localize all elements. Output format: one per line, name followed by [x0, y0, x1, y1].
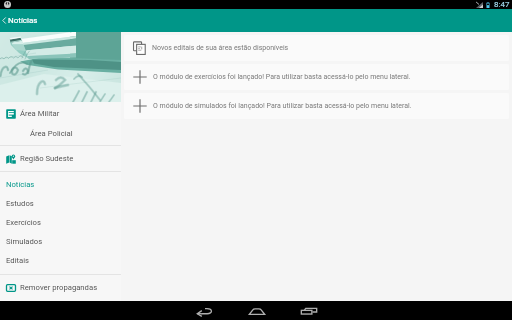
staticText: Exercícios — [6, 218, 41, 227]
button[interactable]: O módulo de exercícios foi lançado! Para… — [124, 64, 509, 90]
staticText: O módulo de exercícios foi lançado! Para… — [153, 73, 411, 81]
staticText: 8:47 — [494, 0, 510, 9]
staticText: Estudos — [6, 199, 34, 208]
button[interactable]: Editais — [0, 251, 121, 270]
staticText: Área Policial — [30, 129, 73, 138]
staticText: Novos editais de sua área estão disponív… — [152, 44, 289, 52]
button[interactable]: Novos editais de sua área estão disponív… — [124, 35, 509, 61]
button[interactable]: O módulo de simulados foi lançado! Para … — [124, 93, 509, 119]
staticText: Notícias — [8, 16, 38, 25]
button[interactable]: Home — [248, 301, 265, 320]
staticText: Região Sudeste — [20, 154, 74, 163]
staticText: Remover propagandas — [20, 283, 98, 292]
button[interactable]: Navigate up — [0, 9, 8, 32]
staticText: Área Militar — [20, 109, 60, 118]
button[interactable]: Área Policial — [0, 124, 121, 142]
button[interactable]: Recent apps — [300, 301, 317, 320]
staticText: O módulo de simulados foi lançado! Para … — [153, 102, 412, 110]
button[interactable]: Back — [196, 301, 213, 320]
button[interactable]: Remover propagandas — [0, 275, 121, 300]
button[interactable]: Exercícios — [0, 213, 121, 232]
button[interactable]: Notícias — [0, 175, 121, 194]
staticText: Editais — [6, 256, 30, 265]
staticText: Notícias — [6, 180, 35, 189]
button[interactable]: Estudos — [0, 194, 121, 213]
button[interactable]: Simulados — [0, 232, 121, 251]
staticText: Simulados — [6, 237, 43, 246]
button[interactable]: Região Sudeste — [0, 146, 121, 171]
button[interactable]: Área Militar — [0, 103, 121, 124]
